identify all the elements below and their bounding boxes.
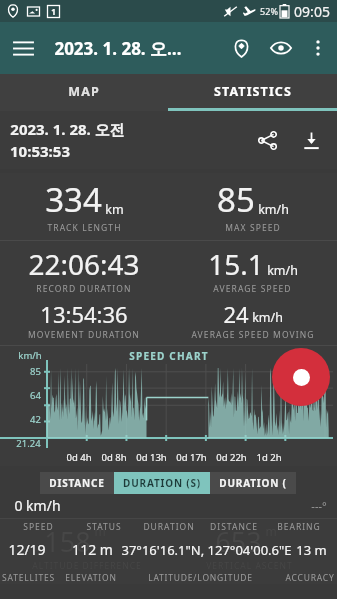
staticText: 0d 8h [101, 451, 127, 464]
button[interactable]: More options [301, 31, 335, 65]
staticText: SPEED CHART [129, 349, 209, 363]
staticText: AVERAGE SPEED MOVING [191, 329, 315, 341]
staticText: 653 [215, 523, 262, 560]
staticText: LATITUDE/LONGITUDE [148, 572, 253, 584]
staticText: 2023. 1. 28. 오… [54, 37, 182, 60]
button[interactable]: MAP [0, 74, 168, 108]
staticText: 85 [30, 365, 41, 378]
staticText: AVERAGE SPEED [213, 283, 292, 295]
staticText: DURATION ( [219, 476, 287, 490]
staticText: 0 km/h [14, 496, 61, 515]
staticText: ACCURACY [285, 572, 335, 584]
staticText: 10:53:53 [10, 141, 70, 161]
button[interactable]: DISTANCE [40, 472, 114, 494]
staticText: 12/19 [8, 540, 46, 559]
staticText: 37°16'16.1"N, 127°04'00.6"E [121, 541, 292, 559]
staticText: 22:06:43 [28, 245, 140, 283]
staticText: MAP [68, 83, 100, 100]
staticText: km/h [252, 309, 283, 326]
button[interactable]: Visibility [261, 28, 301, 68]
button[interactable]: DURATION ( [210, 472, 296, 494]
staticText: TRACK LENGTH [47, 222, 122, 234]
staticText: 21.24 [16, 437, 41, 450]
button[interactable]: Download [289, 118, 333, 162]
staticText: RECORD DURATION [36, 283, 132, 295]
staticText: 0d 4h [66, 451, 92, 464]
staticText: DURATION (S) [123, 476, 201, 490]
staticText: 52% [260, 5, 278, 17]
button[interactable]: Record [272, 348, 330, 406]
staticText: 09:05 [294, 2, 330, 21]
staticText: km/h [258, 201, 289, 218]
button[interactable]: Menu [0, 25, 46, 71]
staticText: DURATION [143, 521, 195, 533]
staticText: km [105, 201, 124, 218]
staticText: 85 [217, 177, 255, 222]
staticText: km/h [267, 262, 298, 279]
button[interactable]: Add marker [221, 28, 261, 68]
staticText: 0d 17h [176, 451, 207, 464]
staticText: DISTANCE [49, 476, 105, 490]
staticText: ELEVATION [65, 572, 117, 584]
staticText: STATISTICS [214, 83, 292, 100]
staticText: 1d 2h [256, 451, 282, 464]
staticText: 2023. 1. 28. 오전 [10, 119, 125, 139]
staticText: km/h [18, 349, 42, 362]
button[interactable]: Share [245, 118, 289, 162]
staticText: 13:54:36 [40, 299, 128, 329]
staticText: SPEED [23, 521, 54, 533]
staticText: 1 [51, 6, 56, 17]
staticText: 112 m [72, 540, 113, 559]
staticText: 0d 22h [216, 451, 247, 464]
staticText: 64 [30, 389, 41, 402]
button[interactable]: STATISTICS [168, 74, 337, 108]
staticText: ---° [311, 498, 327, 513]
staticText: 15.1 [208, 245, 264, 283]
staticText: 334 [45, 177, 102, 222]
staticText: MOVEMENT DURATION [28, 329, 140, 341]
staticText: 24 [223, 299, 249, 329]
button[interactable]: DURATION (S) [114, 472, 210, 494]
staticText: MAX SPEED [225, 222, 281, 234]
staticText: STATUS [86, 521, 122, 533]
staticText: 13 m [296, 541, 327, 559]
staticText: m [91, 523, 106, 539]
staticText: BEARING [277, 521, 321, 533]
staticText: 0d 13h [136, 451, 167, 464]
staticText: SATELLITES [2, 572, 55, 584]
staticText: DISTANCE [210, 521, 258, 533]
staticText: 158 [44, 523, 91, 560]
staticText: 42 [30, 413, 41, 426]
